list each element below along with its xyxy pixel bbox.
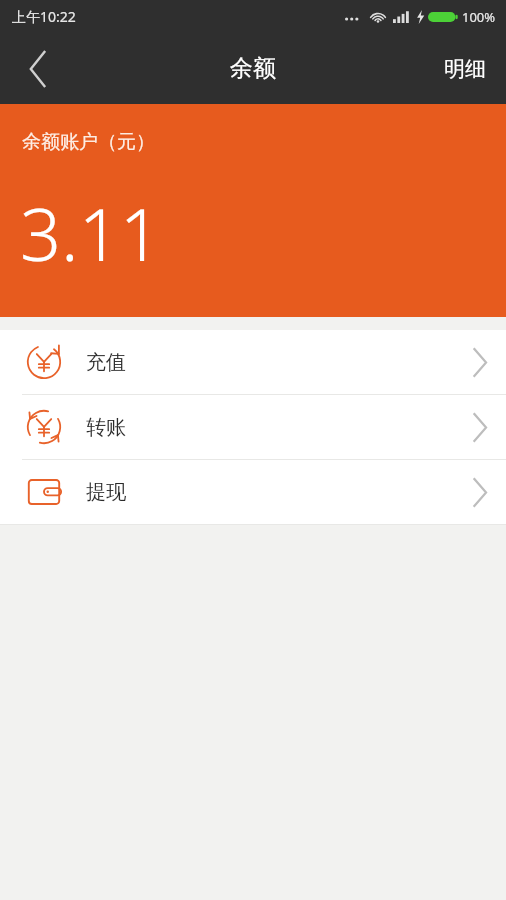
- staticText: 明细: [444, 56, 486, 82]
- button[interactable]: 充值: [0, 330, 506, 394]
- staticText: 100%: [462, 8, 496, 26]
- staticText: 3.11: [20, 184, 161, 282]
- button[interactable]: 转账: [0, 395, 506, 459]
- staticText: 转账: [86, 415, 126, 440]
- staticText: 充值: [86, 350, 126, 375]
- button[interactable]: 明细: [424, 33, 506, 104]
- staticText: 上午10:22: [12, 7, 76, 26]
- button[interactable]: Back: [0, 33, 76, 104]
- staticText: 余额账户（元）: [22, 130, 155, 154]
- staticText: 提现: [86, 480, 126, 505]
- staticText: 余额: [230, 54, 276, 83]
- button[interactable]: 提现: [0, 460, 506, 524]
